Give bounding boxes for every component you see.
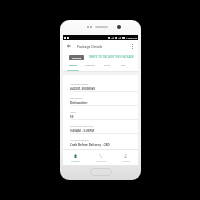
staticText: Log [121,64,126,67]
staticText: SWIPE TO DELIVER THIS PACKAGE [89,55,134,59]
button[interactable]: Account [113,150,138,165]
staticText: Dishwasher [70,101,88,105]
staticText: Pending [72,56,82,59]
staticText: Value [70,111,76,114]
staticText: Recipient [85,64,95,67]
staticText: 11:08 AM [126,36,137,39]
button[interactable]: Description [63,92,138,106]
button[interactable]: Value [63,106,138,120]
staticText: Details [69,64,77,67]
staticText: Cash Before Delivery - CBD [70,143,110,147]
staticText: Account [122,160,130,163]
button[interactable]: Packages [63,150,88,165]
button[interactable]: More options [128,42,137,51]
button[interactable]: Handling options [63,134,138,148]
button[interactable]: Recipient [83,62,96,71]
staticText: Description [70,97,83,100]
button[interactable]: Back [65,42,73,50]
staticText: Handling options [70,139,89,142]
button[interactable]: Pending [69,55,84,60]
staticText: Package Details [77,44,103,49]
staticText: My Routes [96,160,106,163]
button[interactable]: Package number [63,78,138,92]
button[interactable]: Details [63,62,83,71]
staticText: Best pickup Day/Time [70,125,94,128]
button[interactable]: Log [119,62,127,71]
button[interactable]: Items [96,62,119,71]
staticText: 9:00AM - 5:00PM [70,129,95,133]
staticText: Items [104,64,111,67]
button[interactable]: Best pickup Day/Time [63,120,138,134]
button[interactable]: SWIPE TO DELIVER THIS PACKAGE [88,53,135,61]
staticText: Packages [71,160,80,163]
staticText: $0 [70,115,74,119]
button[interactable]: My Routes [88,150,113,165]
staticText: Package number [70,83,89,86]
staticText: #42301-30000045 [70,87,96,91]
